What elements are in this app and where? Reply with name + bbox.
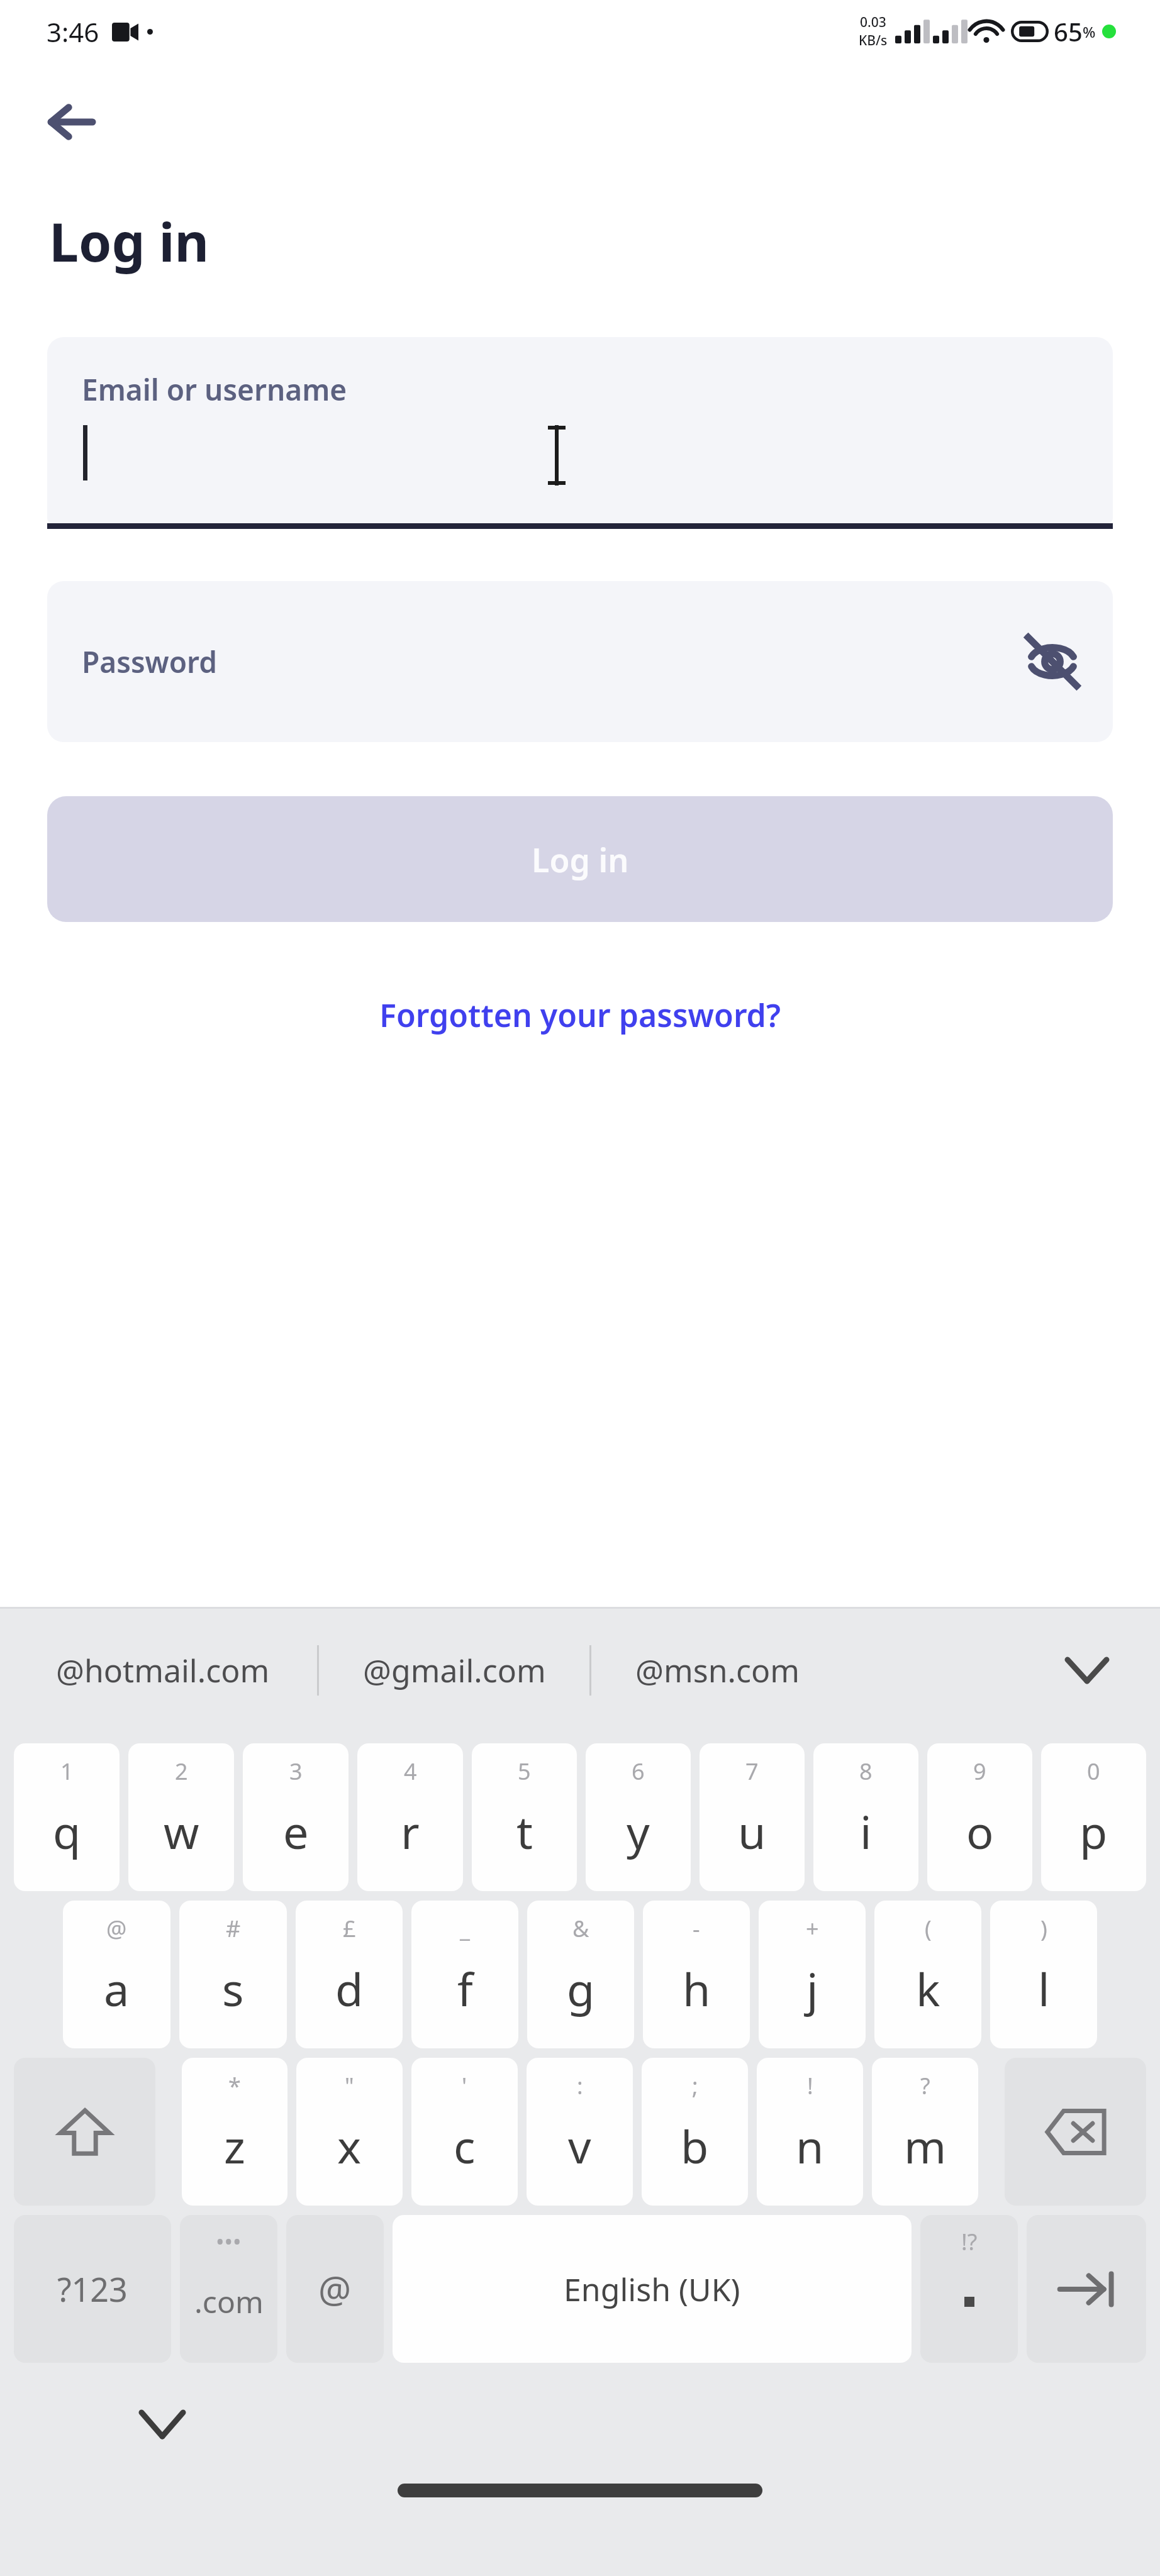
staticText: £: [343, 1913, 356, 1944]
staticText: z: [224, 2115, 245, 2177]
button[interactable]: Log in: [47, 796, 1113, 922]
staticText: 4: [404, 1756, 417, 1787]
staticText: k: [916, 1958, 940, 2019]
button[interactable]: #: [179, 1901, 287, 2048]
staticText: e: [283, 1801, 309, 1862]
button[interactable]: @: [286, 2215, 384, 2363]
staticText: _: [460, 1913, 470, 1944]
button[interactable]: ;: [642, 2058, 748, 2206]
staticText: 1: [60, 1756, 74, 1787]
button[interactable]: Hide keyboard: [126, 2388, 199, 2461]
staticText: j: [806, 1958, 818, 2019]
button[interactable]: 1: [14, 1743, 120, 1891]
staticText: !: [807, 2070, 813, 2101]
staticText: @: [318, 2264, 352, 2314]
button[interactable]: 9: [927, 1743, 1032, 1891]
button[interactable]: ): [990, 1901, 1097, 2048]
staticText: 0: [1087, 1756, 1100, 1787]
staticText: s: [222, 1958, 244, 2019]
staticText: .com: [194, 2281, 264, 2322]
staticText: ': [462, 2070, 467, 2101]
button[interactable]: •••: [180, 2215, 277, 2363]
button[interactable]: ?: [872, 2058, 978, 2206]
staticText: *: [228, 2070, 241, 2101]
button[interactable]: (: [874, 1901, 981, 2048]
staticText: •••: [216, 2226, 242, 2257]
button[interactable]: &: [527, 1901, 634, 2048]
button[interactable]: ': [411, 2058, 518, 2206]
staticText: English (UK): [564, 2268, 740, 2311]
button[interactable]: Forgotten your password?: [367, 985, 793, 1045]
button[interactable]: @msn.com: [591, 1609, 843, 1732]
staticText: r: [401, 1801, 420, 1862]
staticText: @gmail.com: [363, 1649, 546, 1692]
staticText: o: [966, 1801, 994, 1862]
button[interactable]: 2: [128, 1743, 234, 1891]
staticText: ;: [692, 2070, 698, 2101]
staticText: +: [806, 1913, 819, 1944]
button[interactable]: More suggestions: [1049, 1633, 1125, 1708]
button[interactable]: +: [759, 1901, 866, 2048]
button[interactable]: 6: [586, 1743, 691, 1891]
button[interactable]: *: [182, 2058, 287, 2206]
staticText: :: [577, 2070, 583, 2101]
staticText: @msn.com: [635, 1649, 800, 1692]
button[interactable]: !?: [920, 2215, 1018, 2363]
button[interactable]: @gmail.com: [319, 1609, 589, 1732]
button[interactable]: ": [296, 2058, 403, 2206]
staticText: 3: [289, 1756, 303, 1787]
staticText: KB/s: [859, 31, 888, 50]
staticText: t: [516, 1801, 533, 1862]
staticText: g: [567, 1958, 595, 2019]
button[interactable]: Password: [47, 581, 1113, 742]
button[interactable]: [14, 2058, 155, 2206]
staticText: !?: [961, 2226, 978, 2257]
staticText: a: [104, 1958, 130, 2019]
staticText: f: [457, 1958, 473, 2019]
button[interactable]: English (UK): [393, 2215, 912, 2363]
staticText: 9: [973, 1756, 986, 1787]
staticText: Password: [82, 642, 217, 682]
button[interactable]: 0: [1041, 1743, 1146, 1891]
staticText: 6: [632, 1756, 645, 1787]
button[interactable]: 4: [357, 1743, 463, 1891]
button[interactable]: 8: [813, 1743, 918, 1891]
button[interactable]: !: [757, 2058, 863, 2206]
staticText: (: [925, 1913, 932, 1944]
button[interactable]: -: [643, 1901, 750, 2048]
button[interactable]: @: [63, 1901, 170, 2048]
staticText: 2: [175, 1756, 188, 1787]
staticText: w: [164, 1801, 199, 1862]
button[interactable]: 5: [472, 1743, 577, 1891]
staticText: n: [796, 2115, 824, 2177]
staticText: %: [1083, 21, 1096, 42]
button[interactable]: _: [411, 1901, 518, 2048]
staticText: #: [226, 1913, 241, 1944]
staticText: -: [693, 1913, 700, 1944]
staticText: u: [738, 1801, 766, 1862]
staticText: v: [568, 2115, 591, 2177]
staticText: x: [337, 2115, 362, 2177]
button[interactable]: :: [527, 2058, 633, 2206]
staticText: &: [572, 1913, 589, 1944]
button[interactable]: 7: [700, 1743, 805, 1891]
staticText: m: [904, 2115, 947, 2177]
button[interactable]: ?123: [14, 2215, 171, 2363]
button[interactable]: Show password: [1015, 624, 1090, 699]
button[interactable]: 3: [243, 1743, 349, 1891]
staticText: i: [860, 1801, 872, 1862]
staticText: Log in: [532, 837, 629, 882]
button[interactable]: £: [296, 1901, 403, 2048]
button[interactable]: @hotmail.com: [9, 1609, 317, 1732]
button[interactable]: Back: [30, 82, 111, 162]
staticText: p: [1079, 1801, 1108, 1862]
staticText: ": [345, 2070, 354, 2101]
button[interactable]: Email or username: [47, 337, 1113, 523]
staticText: c: [454, 2115, 476, 2177]
staticText: 0.03: [860, 13, 886, 31]
button[interactable]: Next field: [1027, 2215, 1146, 2363]
staticText: ): [1040, 1913, 1047, 1944]
staticText: 8: [859, 1756, 873, 1787]
button[interactable]: Backspace: [1005, 2058, 1146, 2206]
staticText: 7: [745, 1756, 759, 1787]
